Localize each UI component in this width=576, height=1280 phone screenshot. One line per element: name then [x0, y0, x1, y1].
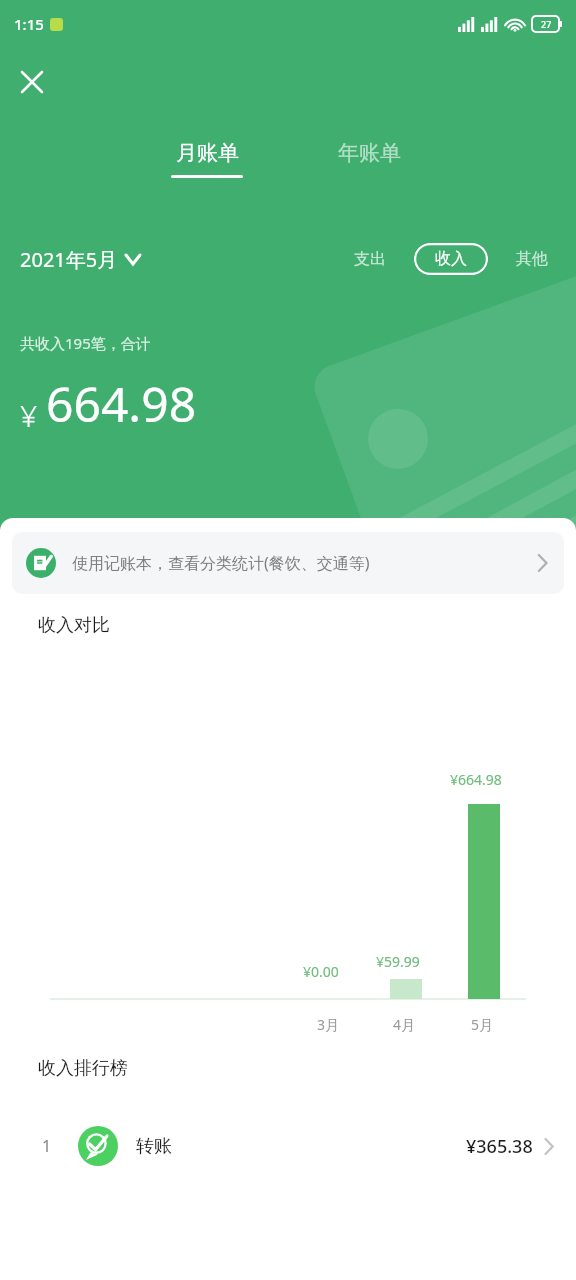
button[interactable]: 1 — [0, 1126, 576, 1166]
staticText: 年账单 — [338, 140, 401, 166]
staticText: ¥664.98 — [450, 770, 502, 789]
staticText: 1:15 — [14, 14, 44, 34]
button[interactable]: 使用记账本，查看分类统计(餐饮、交通等) — [12, 532, 564, 594]
staticText: 2021年5月 — [20, 246, 118, 273]
staticText: 664.98 — [46, 371, 197, 436]
staticText: 收入排行榜 — [38, 1057, 128, 1080]
staticText: ¥365.38 — [466, 1134, 533, 1159]
button[interactable]: 月账单 — [165, 140, 249, 178]
staticText: 月账单 — [176, 140, 239, 166]
staticText: 使用记账本，查看分类统计(餐饮、交通等) — [72, 552, 526, 574]
staticText: ¥ — [20, 395, 38, 436]
button[interactable]: 其他 — [510, 243, 554, 275]
staticText: 3月 — [317, 1015, 340, 1034]
staticText: ¥0.00 — [303, 962, 339, 981]
staticText: 收入对比 — [38, 614, 110, 637]
button[interactable]: 收入 — [414, 243, 488, 275]
button[interactable]: 2021年5月 — [20, 246, 140, 273]
button[interactable]: 年账单 — [327, 140, 411, 178]
staticText: 27 — [541, 18, 552, 30]
staticText: 5月 — [471, 1015, 494, 1034]
staticText: 收入 — [435, 249, 467, 269]
button[interactable]: 支出 — [348, 243, 392, 275]
staticText: ¥59.99 — [376, 952, 420, 971]
staticText: 共收入195笔，合计 — [20, 333, 151, 353]
staticText: 转账 — [136, 1135, 172, 1158]
button[interactable]: Close — [14, 64, 50, 100]
staticText: 1 — [42, 1135, 52, 1157]
staticText: 4月 — [393, 1015, 416, 1034]
